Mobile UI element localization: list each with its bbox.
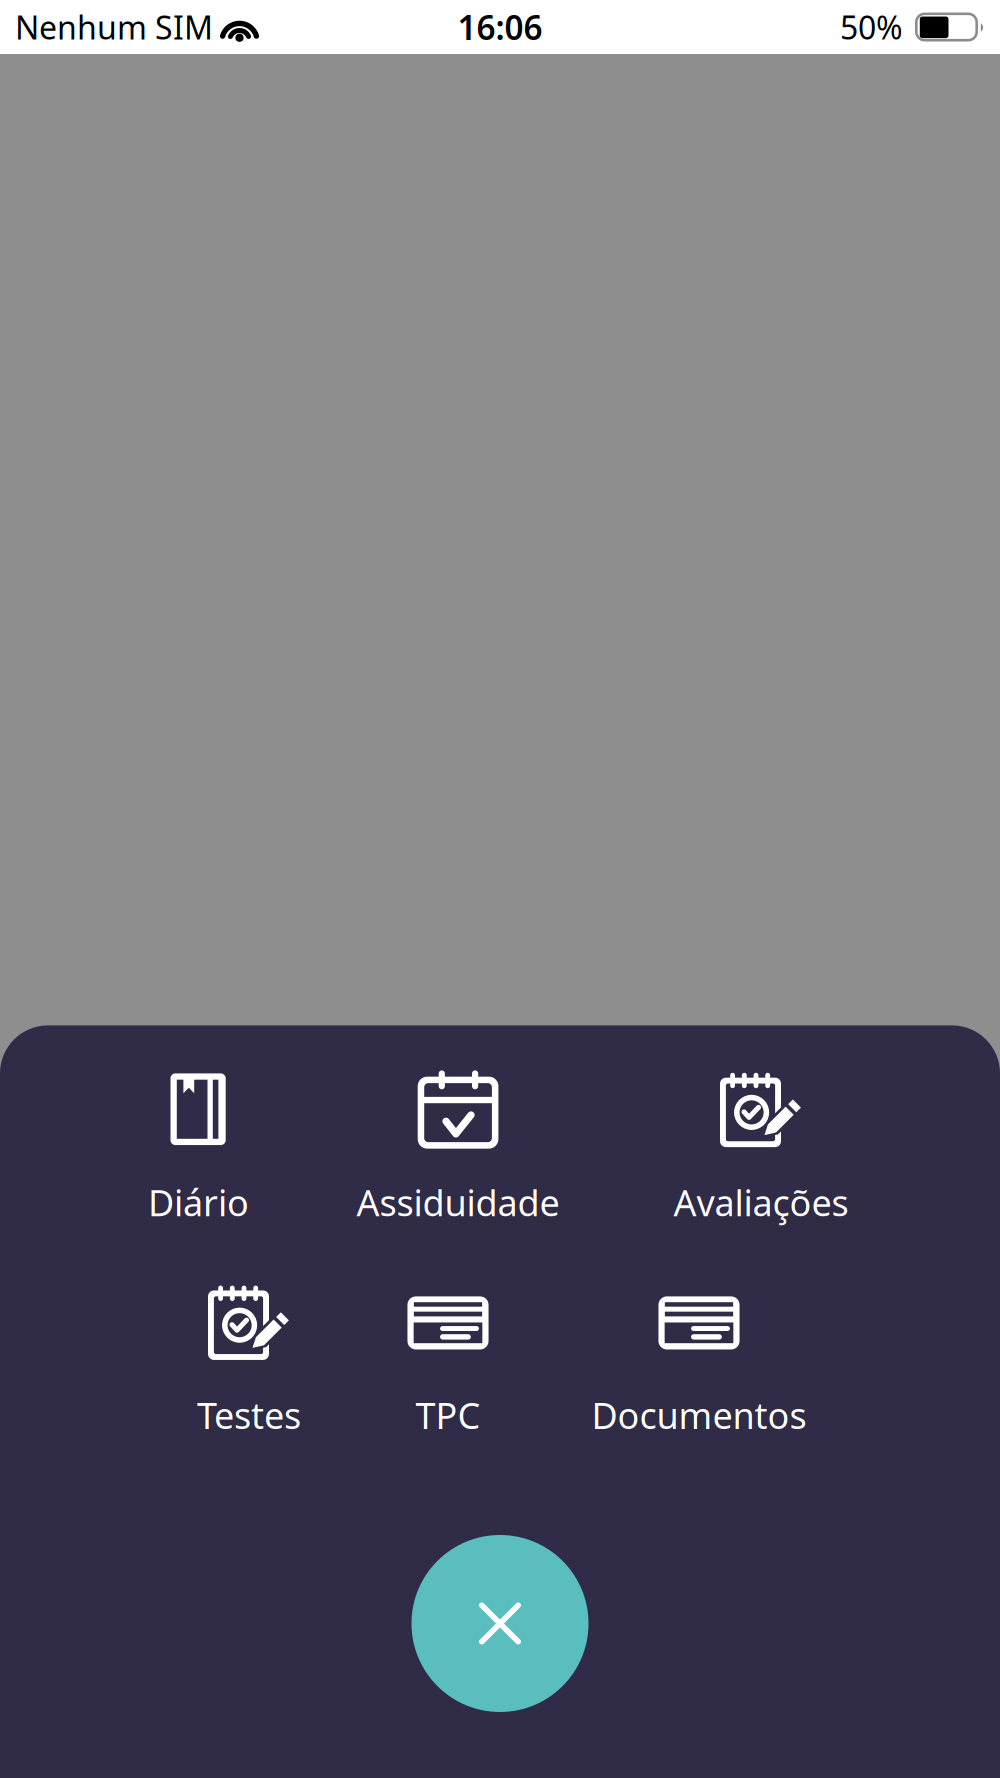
button[interactable]: Documentos [593, 1282, 804, 1439]
staticText: Documentos [591, 1391, 806, 1439]
button[interactable]: Assiduidade [355, 1069, 560, 1226]
button[interactable]: Avaliações [670, 1069, 851, 1226]
staticText: Diário [148, 1178, 249, 1226]
button[interactable]: Diário [151, 1069, 245, 1226]
staticText: 50% [840, 6, 903, 48]
button[interactable]: Fechar [411, 1535, 588, 1712]
staticText: 16:06 [457, 5, 542, 49]
button[interactable]: Testes [195, 1282, 302, 1439]
staticText: Assiduidade [356, 1178, 559, 1226]
button[interactable]: TPC [411, 1282, 485, 1439]
staticText: TPC [415, 1391, 480, 1439]
staticText: Avaliações [673, 1178, 848, 1226]
staticText: Testes [197, 1391, 301, 1439]
staticText: Nenhum SIM [15, 6, 213, 48]
